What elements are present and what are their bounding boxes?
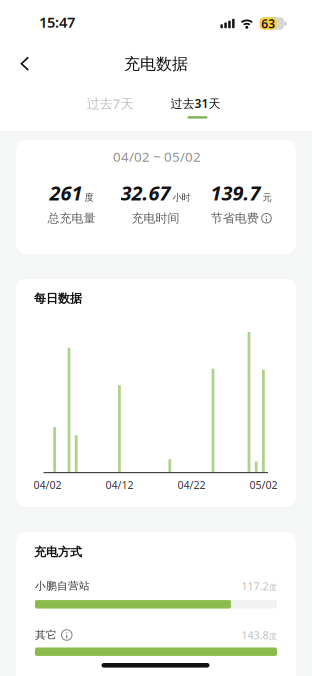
staticText: 05/02	[249, 478, 277, 492]
staticText: 度	[269, 632, 277, 641]
staticText: 04/02 ~ 05/02	[113, 148, 201, 165]
staticText: 度	[269, 583, 277, 592]
staticText: 元	[262, 192, 271, 203]
staticText: 143.8	[241, 628, 268, 642]
button[interactable]: 其它	[35, 628, 277, 642]
staticText: 度	[84, 192, 93, 203]
staticText: 117.2	[241, 579, 268, 593]
staticText: 04/02	[33, 478, 61, 492]
staticText: 139.7	[210, 179, 260, 206]
staticText: 充电数据	[124, 54, 188, 74]
staticText: 小时	[172, 192, 190, 203]
staticText: 节省电费	[211, 211, 259, 226]
button[interactable]	[61, 630, 72, 640]
staticText: 63	[261, 15, 275, 31]
staticText: 15:47	[39, 12, 75, 32]
staticText: 过去7天	[86, 94, 133, 112]
staticText: 每日数据	[34, 291, 82, 306]
button[interactable]: 小鹏自营站	[35, 579, 277, 593]
staticText: 充电方式	[34, 545, 82, 559]
button[interactable]	[11, 49, 39, 79]
staticText: 充电时间	[131, 211, 179, 226]
button[interactable]: 过去7天	[77, 90, 143, 116]
button[interactable]	[262, 213, 271, 223]
staticText: 32.67	[120, 179, 170, 206]
staticText: 总充电量	[47, 211, 95, 226]
staticText: 261	[49, 179, 82, 206]
button[interactable]: 过去31天	[160, 90, 230, 116]
staticText: 04/22	[177, 478, 205, 492]
staticText: 小鹏自营站	[35, 579, 90, 592]
staticText: 其它	[35, 628, 57, 641]
staticText: 04/12	[105, 478, 133, 492]
staticText: 过去31天	[170, 95, 220, 111]
